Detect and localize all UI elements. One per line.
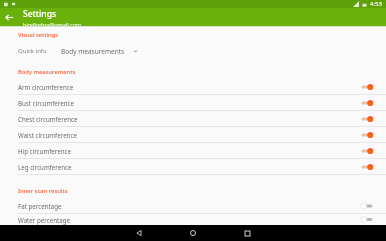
button[interactable]: Hip circumference bbox=[0, 143, 386, 158]
button[interactable]: Fat percentage bbox=[0, 198, 386, 213]
staticText: Quick info bbox=[18, 47, 47, 55]
button[interactable]: Arm circumference bbox=[0, 79, 386, 94]
staticText: 4:53 bbox=[370, 0, 382, 8]
staticText: Settings bbox=[23, 8, 57, 20]
button[interactable]: Water percentage bbox=[0, 214, 386, 225]
button[interactable]: Chest circumference bbox=[0, 111, 386, 126]
staticText: Body measurements bbox=[18, 68, 76, 76]
button[interactable]: Home bbox=[185, 225, 201, 241]
staticText: Fat percentage bbox=[18, 202, 358, 210]
staticText: bigdigdga@gmail.com bbox=[23, 21, 82, 26]
button[interactable]: Bust circumference bbox=[0, 95, 386, 110]
button[interactable]: Back bbox=[131, 225, 147, 241]
staticText: Arm circumference bbox=[18, 83, 358, 91]
staticText: Waist circumference bbox=[18, 131, 358, 139]
staticText: Body measurements bbox=[61, 47, 125, 56]
staticText: Bust circumference bbox=[18, 99, 358, 107]
button[interactable]: Navigate up bbox=[0, 8, 18, 26]
staticText: Chest circumference bbox=[18, 115, 358, 123]
staticText: Visual settings bbox=[18, 31, 59, 39]
staticText: Leg circumference bbox=[18, 163, 358, 171]
button[interactable]: Quick info bbox=[0, 42, 386, 60]
button[interactable]: Recent apps bbox=[239, 225, 255, 241]
button[interactable]: Leg circumference bbox=[0, 159, 386, 174]
staticText: Inner scan results bbox=[18, 187, 68, 195]
staticText: Hip circumference bbox=[18, 147, 358, 155]
staticText: Water percentage bbox=[18, 216, 358, 224]
button[interactable]: Waist circumference bbox=[0, 127, 386, 142]
